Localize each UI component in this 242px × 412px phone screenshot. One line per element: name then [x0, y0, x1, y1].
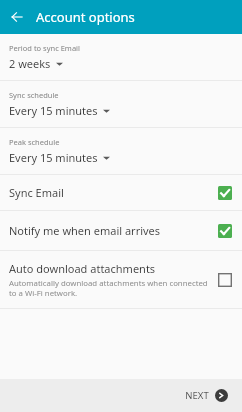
staticText: Automatically download attachments when … — [9, 278, 212, 298]
staticText: Every 15 minutes — [9, 150, 98, 165]
staticText: Account options — [36, 8, 135, 26]
staticText: Every 15 minutes — [9, 103, 98, 118]
button[interactable]: Navigate up — [0, 0, 34, 34]
staticText: Auto download attachments — [9, 261, 156, 276]
staticText: 2 weeks — [9, 56, 51, 71]
button[interactable]: Period to sync Email — [0, 34, 242, 80]
button[interactable]: Sync schedule — [0, 81, 242, 127]
staticText: Period to sync Email — [9, 43, 80, 53]
button[interactable]: Auto download attachments — [0, 251, 242, 308]
staticText: Sync schedule — [9, 90, 59, 100]
button[interactable]: Notify me when email arrives — [0, 211, 242, 250]
staticText: NEXT — [185, 389, 209, 402]
button[interactable]: Peak schedule — [0, 128, 242, 174]
button[interactable]: Sync Email — [0, 175, 242, 210]
button[interactable]: NEXT — [169, 379, 242, 412]
staticText: Notify me when email arrives — [9, 223, 161, 238]
staticText: Sync Email — [9, 185, 64, 200]
staticText: Peak schedule — [9, 137, 60, 147]
